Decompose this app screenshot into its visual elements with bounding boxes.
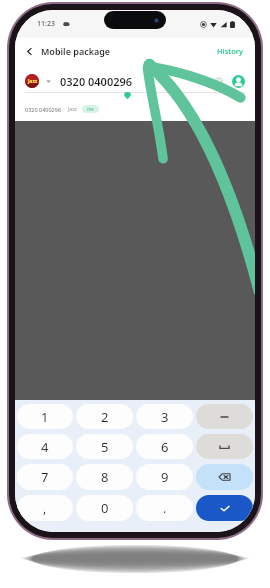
staticText: 9 <box>161 468 169 486</box>
button[interactable]: 1 <box>17 404 73 429</box>
staticText: 6 <box>161 438 169 456</box>
button[interactable]: 9 <box>136 464 193 490</box>
staticText: 0 <box>101 499 109 517</box>
button[interactable]: History <box>205 41 255 61</box>
staticText: 1 <box>41 408 49 426</box>
button[interactable]: 3 <box>136 404 193 429</box>
staticText: History <box>217 46 243 56</box>
button[interactable]: , <box>17 495 73 521</box>
button[interactable]: 5 <box>76 434 133 459</box>
staticText: 8 <box>101 468 109 486</box>
staticText: Jazz <box>68 106 77 113</box>
button[interactable]: Dash <box>196 404 253 429</box>
button[interactable]: 7 <box>17 464 73 490</box>
button[interactable]: 0320 0400296 <box>15 103 255 115</box>
button[interactable]: Confirm <box>196 495 253 521</box>
button[interactable]: 4 <box>17 434 73 459</box>
staticText: 0320 0400296 <box>60 74 133 89</box>
button[interactable]: Operator Jazz <box>25 74 39 88</box>
button[interactable]: Clear <box>213 75 225 87</box>
staticText: 2 <box>101 408 109 426</box>
staticText: me <box>87 106 94 112</box>
button[interactable]: 2 <box>76 404 133 429</box>
staticText: 4 <box>41 438 49 456</box>
staticText: Jazz <box>28 78 37 84</box>
button[interactable]: Back <box>15 41 117 61</box>
staticText: 3 <box>161 408 169 426</box>
button[interactable]: 8 <box>76 464 133 490</box>
staticText: . <box>163 500 167 516</box>
button[interactable]: Choose operator <box>43 76 54 87</box>
staticText: , <box>43 500 47 516</box>
button[interactable]: 0 <box>76 495 133 521</box>
staticText: 5 <box>101 438 109 456</box>
staticText: 11:23 <box>37 19 55 29</box>
button[interactable]: 6 <box>136 434 193 459</box>
button[interactable]: Space <box>196 434 253 459</box>
staticText: 7 <box>41 468 49 486</box>
staticText: Mobile package <box>41 45 111 57</box>
staticText: 0320 0400296 <box>25 106 62 113</box>
other: Back <box>25 47 34 56</box>
button[interactable]: Contacts <box>232 75 245 88</box>
button[interactable]: Backspace <box>196 464 253 490</box>
button[interactable]: . <box>136 495 193 521</box>
other: Choose operator <box>46 79 51 84</box>
